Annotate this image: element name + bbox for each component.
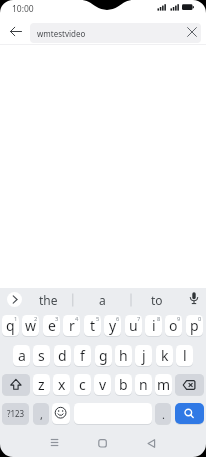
staticText: j bbox=[142, 346, 146, 365]
button[interactable] bbox=[136, 431, 166, 456]
button[interactable]: z bbox=[33, 374, 50, 395]
staticText: v bbox=[99, 375, 107, 394]
staticText: the bbox=[39, 292, 58, 308]
button[interactable]: a bbox=[13, 345, 30, 366]
staticText: k bbox=[161, 346, 169, 365]
staticText: 4 bbox=[75, 315, 79, 323]
button[interactable]: h bbox=[115, 345, 132, 366]
button[interactable]: l bbox=[176, 345, 193, 366]
staticText: 7 bbox=[137, 315, 141, 323]
button[interactable]: c bbox=[74, 374, 91, 395]
staticText: 6 bbox=[116, 315, 120, 323]
staticText: r bbox=[69, 316, 75, 335]
button[interactable]: m bbox=[155, 374, 172, 395]
button[interactable]: w bbox=[22, 315, 39, 336]
staticText: o bbox=[169, 316, 178, 335]
button[interactable]: d bbox=[54, 345, 71, 366]
staticText: b bbox=[119, 375, 128, 394]
button[interactable]: o bbox=[165, 315, 182, 336]
button[interactable] bbox=[184, 290, 204, 310]
button[interactable]: v bbox=[94, 374, 111, 395]
staticText: y bbox=[109, 316, 117, 335]
button[interactable] bbox=[52, 403, 70, 424]
button[interactable]: u bbox=[125, 315, 142, 336]
staticText: 0 bbox=[198, 315, 202, 323]
button[interactable] bbox=[2, 374, 30, 395]
staticText: q bbox=[6, 316, 15, 335]
staticText: u bbox=[129, 316, 138, 335]
button[interactable]: y bbox=[104, 315, 121, 336]
staticText: s bbox=[38, 346, 45, 365]
button[interactable] bbox=[175, 374, 204, 395]
staticText: 5 bbox=[96, 315, 100, 323]
staticText: , bbox=[40, 407, 43, 422]
staticText: ?123 bbox=[7, 408, 25, 419]
button[interactable]: p bbox=[186, 315, 203, 336]
button[interactable]: the bbox=[24, 291, 72, 309]
button[interactable] bbox=[40, 431, 70, 456]
staticText: 3 bbox=[55, 315, 59, 323]
staticText: 2 bbox=[34, 315, 38, 323]
button[interactable] bbox=[88, 431, 118, 456]
staticText: x bbox=[58, 375, 66, 394]
staticText: m bbox=[157, 375, 171, 394]
button[interactable]: t bbox=[84, 315, 101, 336]
staticText: i bbox=[152, 316, 156, 335]
button[interactable] bbox=[4, 20, 28, 44]
button[interactable]: . bbox=[155, 403, 171, 424]
button[interactable]: n bbox=[135, 374, 152, 395]
staticText: c bbox=[79, 375, 86, 394]
staticText: 9 bbox=[177, 315, 181, 323]
staticText: h bbox=[119, 346, 128, 365]
staticText: wmtestvideo bbox=[37, 28, 86, 39]
button[interactable]: e bbox=[43, 315, 60, 336]
button[interactable]: a bbox=[74, 291, 130, 309]
button[interactable]: j bbox=[135, 345, 152, 366]
button[interactable]: x bbox=[53, 374, 70, 395]
button[interactable] bbox=[7, 292, 22, 307]
staticText: p bbox=[190, 316, 199, 335]
staticText: 8 bbox=[157, 315, 161, 323]
staticText: to bbox=[151, 292, 163, 308]
button[interactable]: , bbox=[33, 403, 49, 424]
staticText: 1 bbox=[14, 315, 18, 323]
staticText: l bbox=[183, 346, 187, 365]
staticText: n bbox=[139, 375, 148, 394]
button[interactable]: i bbox=[145, 315, 162, 336]
staticText: d bbox=[58, 346, 67, 365]
staticText: g bbox=[99, 346, 108, 365]
staticText: f bbox=[80, 346, 85, 365]
button[interactable]: q bbox=[2, 315, 19, 336]
button[interactable]: r bbox=[63, 315, 80, 336]
staticText: a bbox=[99, 292, 106, 308]
button[interactable]: g bbox=[95, 345, 112, 366]
staticText: z bbox=[38, 375, 45, 394]
staticText: e bbox=[48, 316, 56, 335]
button[interactable] bbox=[184, 24, 200, 40]
staticText: 10:00 bbox=[12, 3, 34, 15]
staticText: a bbox=[18, 346, 26, 365]
staticText: w bbox=[25, 316, 37, 335]
staticText: . bbox=[162, 407, 165, 422]
button[interactable] bbox=[175, 403, 204, 424]
button[interactable]: ?123 bbox=[2, 403, 29, 424]
button[interactable]: k bbox=[156, 345, 173, 366]
button[interactable]: b bbox=[115, 374, 132, 395]
button[interactable]: to bbox=[132, 291, 182, 309]
staticText: t bbox=[90, 316, 96, 335]
button[interactable]: f bbox=[74, 345, 91, 366]
button[interactable]: s bbox=[33, 345, 50, 366]
